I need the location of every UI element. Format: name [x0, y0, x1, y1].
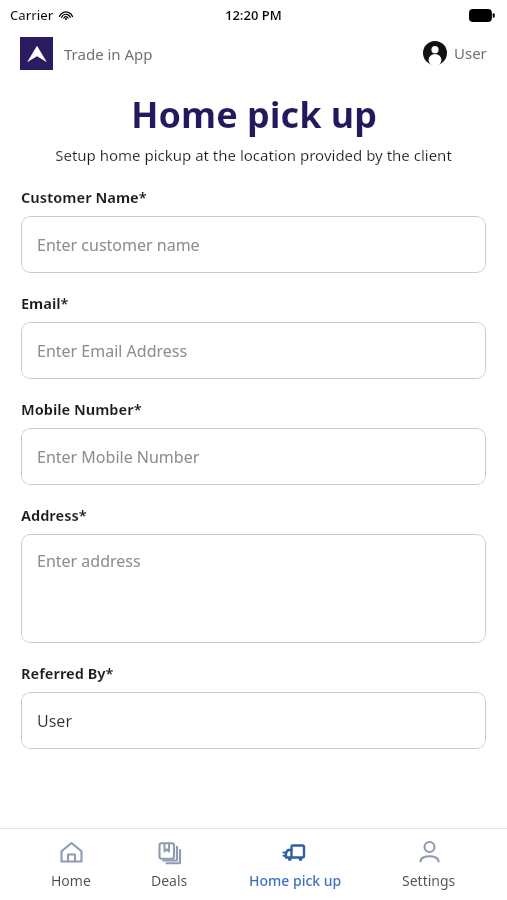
- staticText: Enter Email Address: [37, 340, 188, 362]
- staticText: Email*: [21, 293, 69, 313]
- staticText: Referred By*: [21, 663, 114, 683]
- staticText: Trade in App: [64, 44, 153, 64]
- other: Deals: [157, 840, 182, 865]
- staticText: Home pick up: [249, 871, 342, 890]
- staticText: Customer Name*: [21, 187, 147, 207]
- staticText: User: [454, 43, 487, 63]
- button[interactable]: Settings: [392, 834, 466, 896]
- staticText: Home: [51, 871, 91, 890]
- staticText: Home pick up: [131, 90, 377, 139]
- staticText: Carrier: [10, 6, 54, 24]
- button[interactable]: Home: [41, 834, 101, 896]
- staticText: Setup home pickup at the location provid…: [22, 145, 485, 165]
- button[interactable]: Enter Email Address: [21, 322, 486, 379]
- staticText: Address*: [21, 505, 87, 525]
- staticText: Deals: [151, 871, 188, 890]
- staticText: Settings: [402, 871, 456, 890]
- staticText: Enter customer name: [37, 234, 200, 256]
- button[interactable]: Trade in App: [20, 37, 153, 70]
- other: Home pick up: [283, 840, 308, 865]
- button[interactable]: User: [21, 692, 486, 749]
- other: Settings: [417, 840, 442, 865]
- button[interactable]: User account: [423, 41, 487, 65]
- staticText: User: [37, 710, 72, 732]
- button[interactable]: Home pick up: [239, 834, 352, 896]
- other: User account: [423, 41, 447, 65]
- staticText: Mobile Number*: [21, 399, 142, 419]
- staticText: Enter address: [37, 550, 141, 572]
- button[interactable]: Enter customer name: [21, 216, 486, 273]
- button[interactable]: Enter address: [21, 534, 486, 643]
- staticText: Enter Mobile Number: [37, 446, 200, 468]
- other: Home: [59, 840, 84, 865]
- staticText: 12:20 PM: [225, 6, 282, 24]
- button[interactable]: Deals: [141, 834, 198, 896]
- button[interactable]: Enter Mobile Number: [21, 428, 486, 485]
